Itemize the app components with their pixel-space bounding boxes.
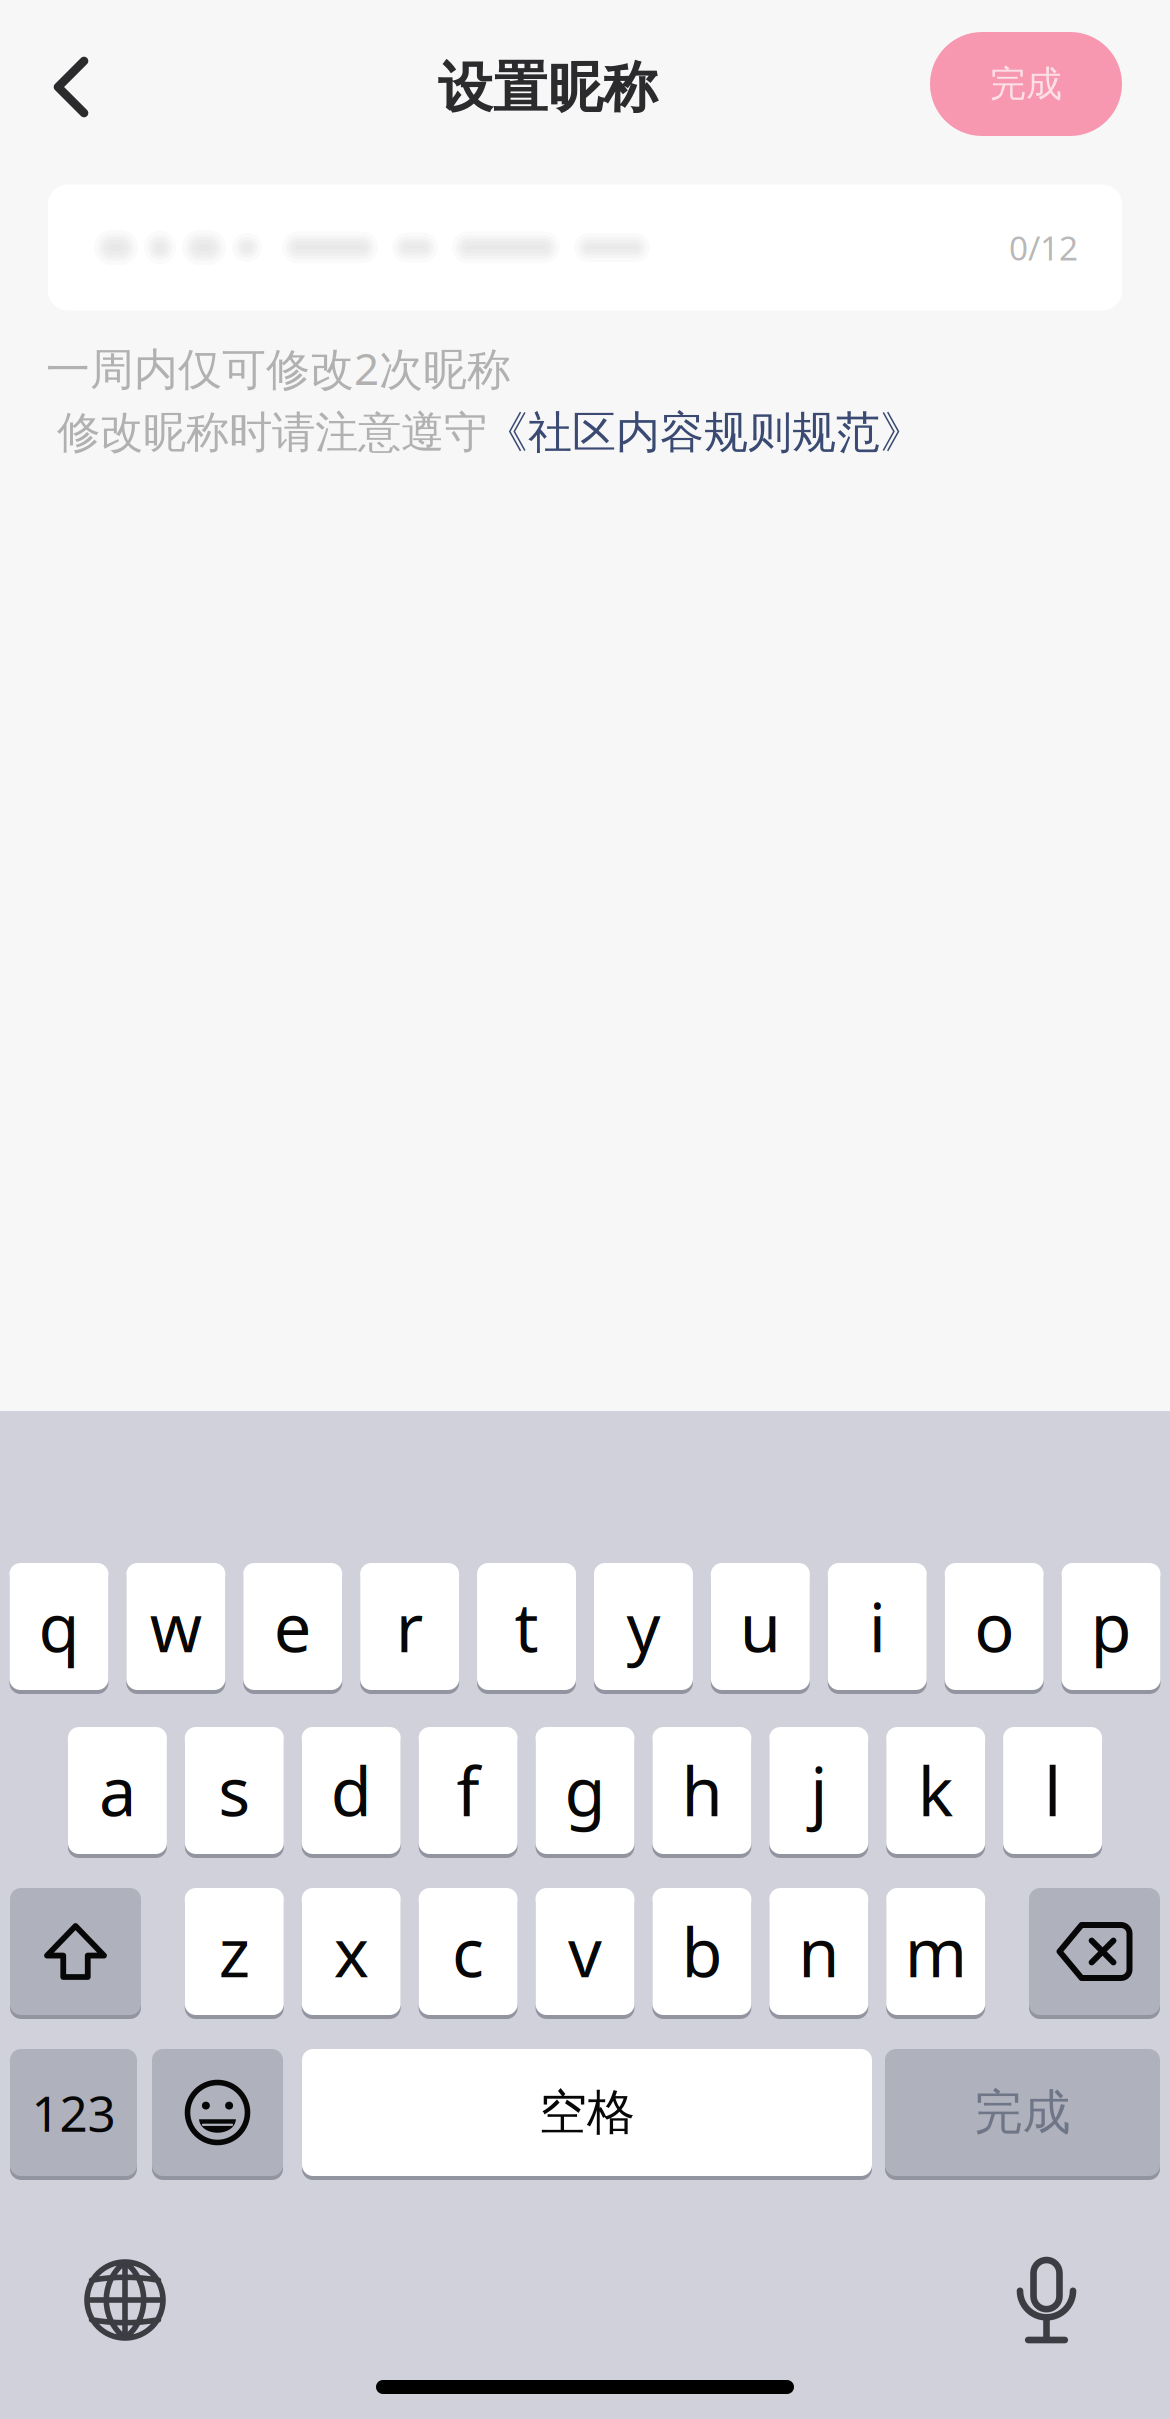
staticText: f (457, 1745, 480, 1836)
button[interactable]: 语音输入 (990, 2230, 1103, 2370)
staticText: y (626, 1581, 660, 1672)
button[interactable]: 空格 (302, 2047, 872, 2178)
button[interactable]: Delete (1029, 1886, 1160, 2017)
button[interactable]: p (1061, 1561, 1160, 1692)
staticText: j (810, 1745, 827, 1836)
staticText: t (515, 1581, 539, 1672)
button[interactable]: q (9, 1561, 108, 1692)
button[interactable]: a (68, 1725, 167, 1856)
staticText: 完成 (974, 2082, 1070, 2143)
button[interactable]: o (945, 1561, 1044, 1692)
button[interactable]: c (419, 1886, 518, 2017)
button[interactable]: e (243, 1561, 342, 1692)
staticText: 123 (31, 2079, 115, 2146)
button[interactable]: z (185, 1886, 284, 2017)
staticText: v (568, 1906, 602, 1997)
staticText: w (150, 1581, 202, 1672)
button[interactable]: m (886, 1886, 985, 2017)
staticText: 一周内仅可修改2次昵称 (46, 338, 511, 398)
button[interactable]: 完成 (930, 32, 1122, 136)
staticText: 0/12 (1009, 225, 1078, 270)
button[interactable]: Shift (10, 1886, 141, 2017)
staticText: n (798, 1906, 839, 1997)
button[interactable]: 返回 (0, 26, 134, 146)
staticText: g (564, 1745, 605, 1836)
staticText: m (905, 1906, 967, 1997)
button[interactable]: s (185, 1725, 284, 1856)
staticText: 设置昵称 (438, 54, 658, 122)
staticText: x (334, 1906, 369, 1997)
button[interactable]: 昵称 (48, 184, 1122, 310)
button[interactable]: 完成 (885, 2047, 1160, 2178)
staticText: s (218, 1745, 250, 1836)
button[interactable]: v (535, 1886, 634, 2017)
staticText: 修改昵称时请注意遵守 (57, 405, 487, 460)
staticText: l (1044, 1745, 1061, 1836)
button[interactable]: w (126, 1561, 225, 1692)
button[interactable]: j (769, 1725, 868, 1856)
button[interactable]: n (769, 1886, 868, 2017)
staticText: e (274, 1581, 312, 1672)
button[interactable]: k (886, 1725, 985, 1856)
button[interactable]: Emoji (152, 2047, 283, 2178)
button[interactable]: b (652, 1886, 751, 2017)
button[interactable]: h (652, 1725, 751, 1856)
button[interactable]: g (535, 1725, 634, 1856)
button[interactable]: y (594, 1561, 693, 1692)
button[interactable]: 123 (10, 2047, 137, 2178)
staticText: o (974, 1581, 1014, 1672)
staticText: d (331, 1745, 372, 1836)
staticText: 完成 (990, 61, 1062, 107)
button[interactable]: f (419, 1725, 518, 1856)
staticText: u (740, 1581, 781, 1672)
staticText: i (869, 1581, 886, 1672)
staticText: a (99, 1745, 136, 1836)
button[interactable]: x (302, 1886, 401, 2017)
staticText: k (918, 1745, 954, 1836)
button[interactable]: u (711, 1561, 810, 1692)
staticText: p (1090, 1581, 1131, 1672)
button[interactable]: t (477, 1561, 576, 1692)
staticText: 空格 (539, 2082, 635, 2143)
staticText: 《社区内容规则规范》 (484, 405, 924, 460)
button[interactable]: l (1003, 1725, 1102, 1856)
staticText: r (396, 1581, 424, 1672)
staticText: h (681, 1745, 722, 1836)
staticText: q (38, 1581, 79, 1672)
button[interactable]: r (360, 1561, 459, 1692)
staticText: c (452, 1906, 484, 1997)
button[interactable]: i (828, 1561, 927, 1692)
button[interactable]: d (302, 1725, 401, 1856)
button[interactable]: 《社区内容规则规范》 (484, 405, 924, 460)
button[interactable]: 切换键盘 (57, 2231, 193, 2369)
staticText: z (219, 1906, 250, 1997)
staticText: b (681, 1906, 722, 1997)
